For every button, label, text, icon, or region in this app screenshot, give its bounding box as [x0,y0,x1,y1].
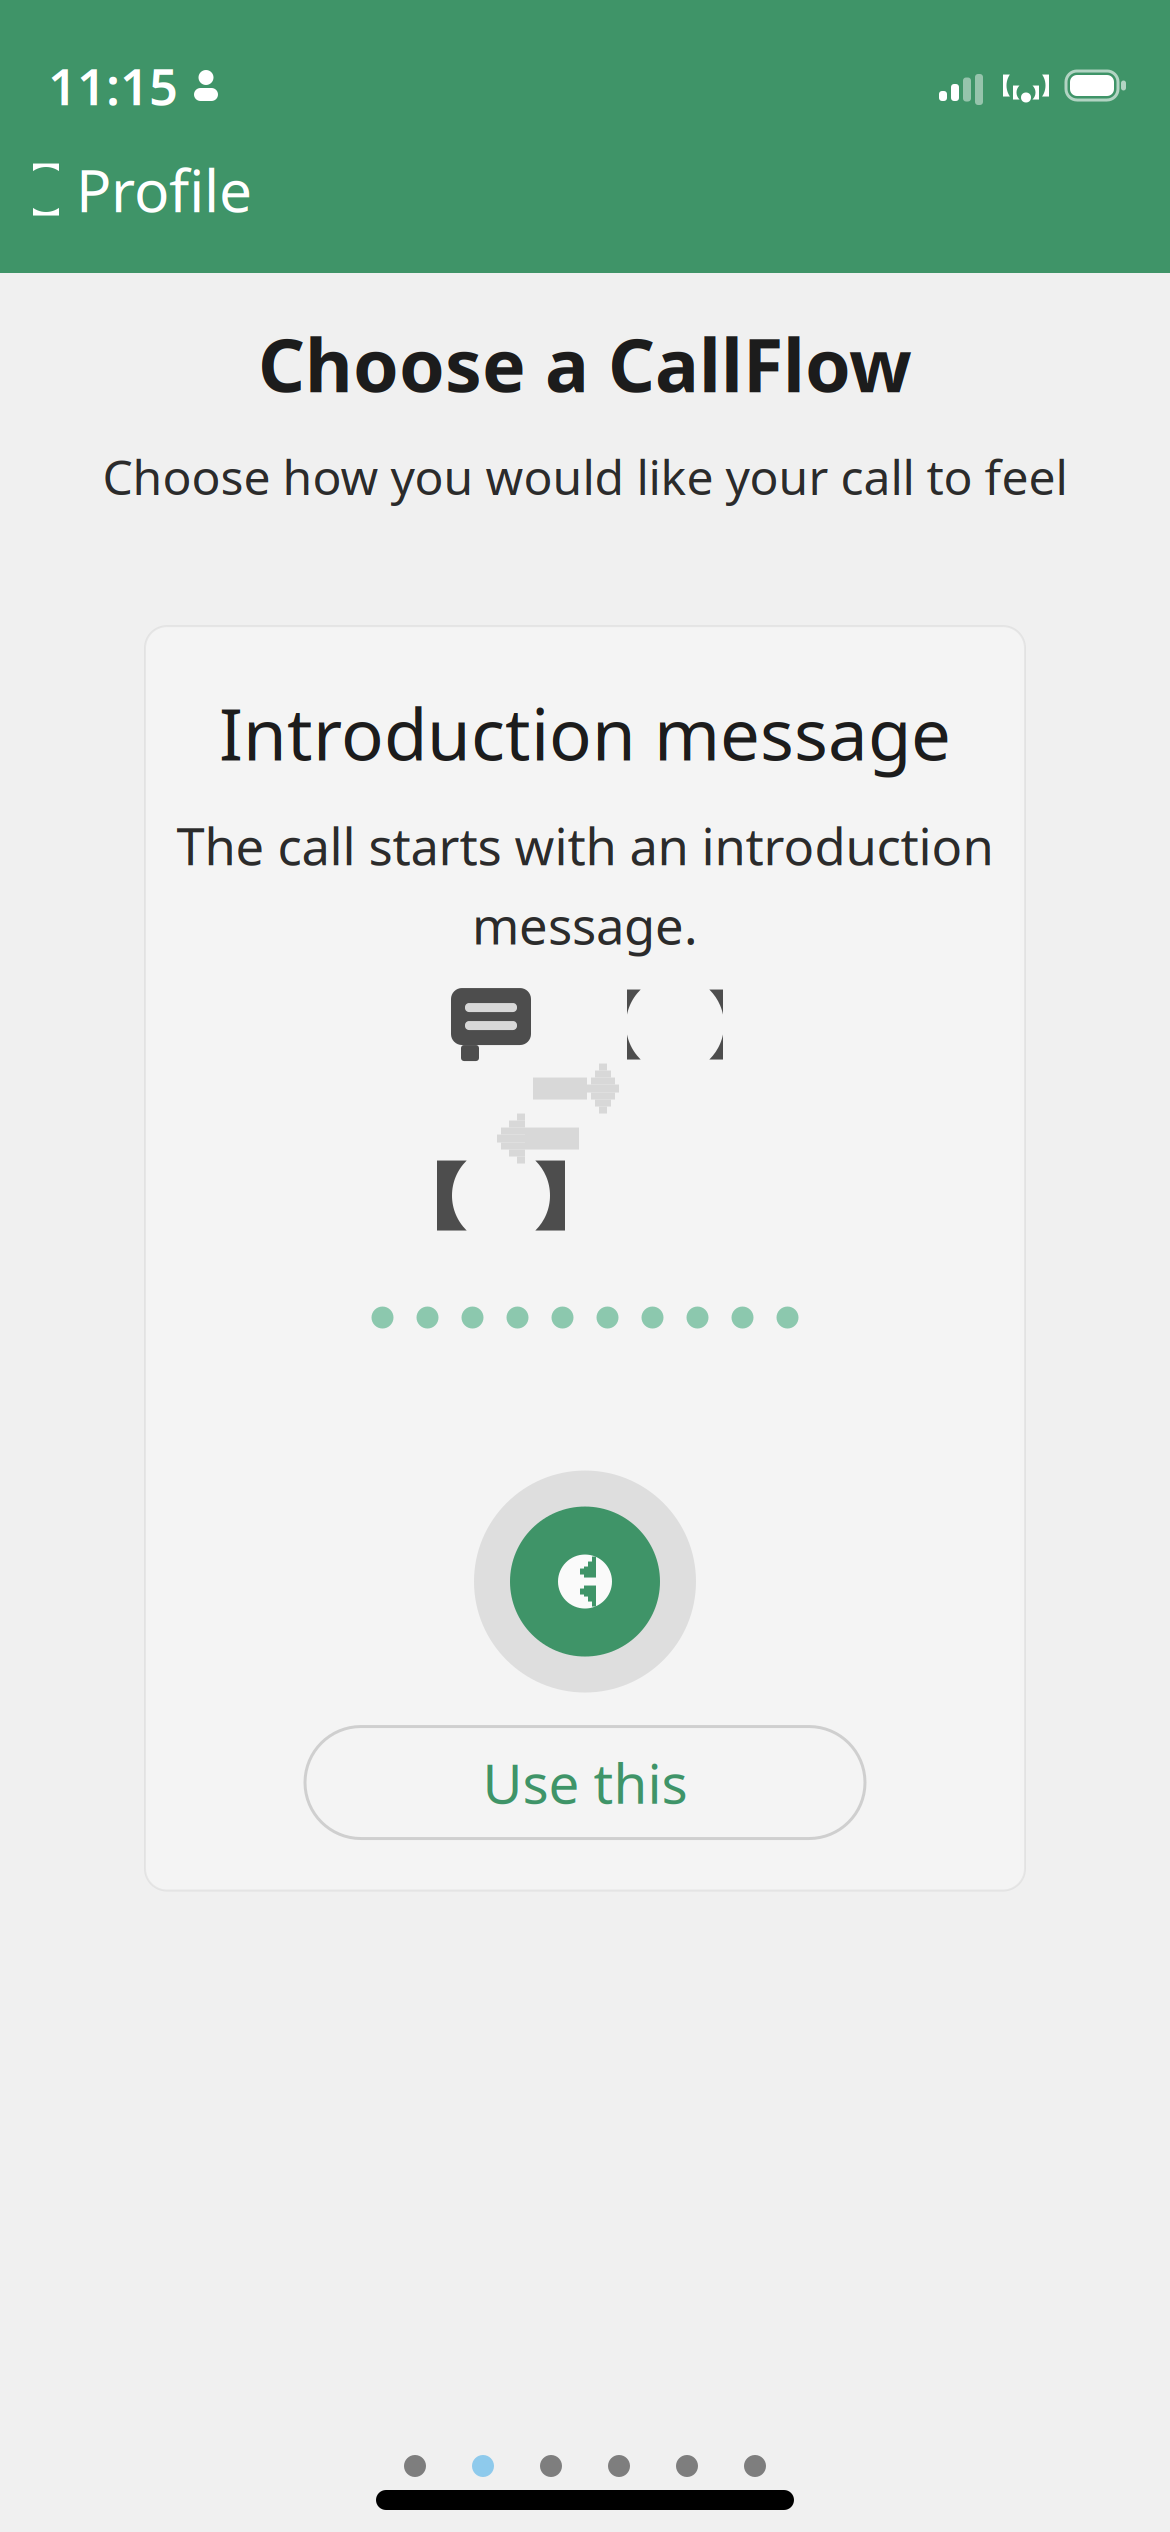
staticText: message. [472,891,698,959]
button[interactable]: Back to Profile [6,132,278,246]
button[interactable]: Use this [305,1726,865,1838]
staticText: 11:15 [48,52,178,119]
staticText: Choose how you would like your call to f… [102,444,1067,508]
staticText: The call starts with an introduction [176,812,993,879]
staticText: Introduction message [219,686,951,780]
staticText: Profile [76,150,252,228]
staticText: Use this [482,1746,687,1819]
staticText: Choose a CallFlow [258,315,912,412]
button[interactable]: Play introduction message preview [474,1470,696,1692]
